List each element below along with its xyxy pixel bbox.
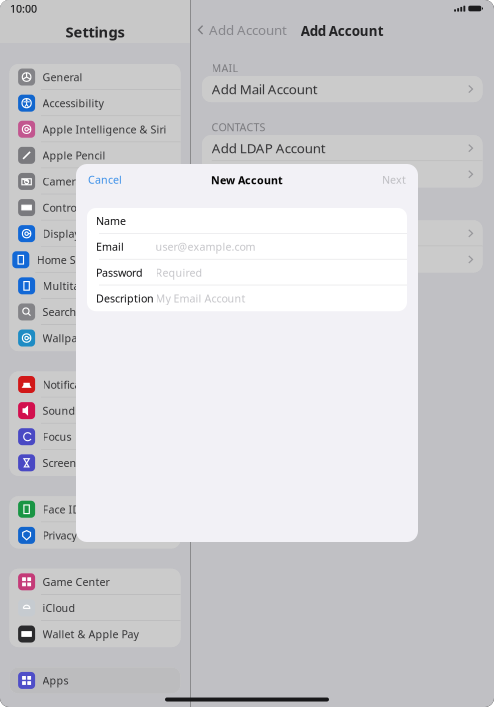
staticText: Apple Intelligence & Siri <box>43 122 167 136</box>
button[interactable]: Display & Brightness <box>9 221 180 247</box>
staticText: Required <box>155 265 202 280</box>
button[interactable]: Camera <box>9 168 180 194</box>
staticText: Privacy & Security <box>43 528 131 542</box>
button[interactable]: General <box>9 64 180 90</box>
staticText: Settings <box>65 22 124 41</box>
button[interactable]: Notifications <box>9 371 180 398</box>
staticText: Accessibility <box>43 96 104 110</box>
staticText: Home Screen & App Library <box>37 253 177 267</box>
staticText: Add Account <box>209 21 287 39</box>
staticText: user@example.com <box>155 240 255 254</box>
staticText: Apps <box>43 673 69 688</box>
staticText: Add Subscribed Calendar <box>212 251 366 268</box>
staticText: Name <box>96 214 126 228</box>
staticText: New Account <box>211 173 283 187</box>
staticText: Wallet & Apple Pay <box>43 627 139 641</box>
button[interactable]: Add Account <box>191 21 287 39</box>
staticText: My Email Account <box>155 291 245 305</box>
button[interactable]: Screen Time <box>9 450 180 476</box>
button[interactable]: Apps <box>9 667 180 693</box>
button[interactable]: Add CalDAV Account <box>202 220 482 246</box>
button[interactable]: Accessibility <box>9 90 180 116</box>
staticText: Search <box>43 305 77 319</box>
staticText: General <box>43 70 83 84</box>
button[interactable]: Control Center <box>9 194 180 221</box>
staticText: Multitasking & Gestures <box>43 279 167 293</box>
staticText: Password <box>96 265 143 280</box>
button[interactable]: Home Screen & App Library <box>4 247 186 273</box>
button[interactable]: Privacy & Security <box>9 522 180 548</box>
staticText: Description <box>96 291 154 305</box>
button[interactable]: Add CardDAV Account <box>202 161 482 187</box>
button[interactable]: Add LDAP Account <box>202 135 482 161</box>
staticText: Focus <box>43 430 72 444</box>
staticText: Face ID & Passcode <box>43 502 141 516</box>
staticText: MAIL <box>212 61 239 75</box>
button[interactable]: Apple Intelligence & Siri <box>9 116 180 142</box>
button[interactable]: Game Center <box>9 569 180 595</box>
staticText: iCloud <box>43 601 76 615</box>
staticText: CONTACTS <box>212 120 266 134</box>
staticText: Add CardDAV Account <box>212 165 346 183</box>
staticText: Add CalDAV Account <box>212 224 336 242</box>
staticText: Sounds <box>43 403 81 418</box>
button[interactable]: Add Subscribed Calendar <box>202 246 482 272</box>
staticText: Notifications <box>43 377 106 392</box>
staticText: Add LDAP Account <box>212 139 326 157</box>
staticText: Next <box>382 172 406 187</box>
button[interactable]: Apple Pencil <box>9 142 180 168</box>
staticText: Add Mail Account <box>212 80 318 98</box>
button[interactable]: Next <box>380 170 408 189</box>
button[interactable]: Focus <box>9 424 180 450</box>
staticText: Control Center <box>43 200 117 215</box>
staticText: 10:00 <box>10 1 37 16</box>
button[interactable]: Face ID & Passcode <box>9 496 180 522</box>
button[interactable]: iCloud <box>9 595 180 621</box>
staticText: Cancel <box>88 172 122 187</box>
button[interactable]: Add Mail Account <box>202 76 482 102</box>
staticText: CALENDARS <box>212 205 274 219</box>
staticText: Camera <box>43 174 82 189</box>
button[interactable]: Multitasking & Gestures <box>9 273 180 299</box>
staticText: Game Center <box>43 575 110 589</box>
button[interactable]: Wallet & Apple Pay <box>9 621 180 647</box>
staticText: Apple Pencil <box>43 148 106 162</box>
staticText: Email <box>96 240 124 254</box>
staticText: Wallpaper <box>43 331 95 345</box>
staticText: Screen Time <box>43 456 105 470</box>
button[interactable]: Cancel <box>86 170 124 189</box>
button[interactable]: Sounds <box>9 398 180 424</box>
button[interactable]: Wallpaper <box>9 325 180 351</box>
button[interactable]: Search <box>9 299 180 325</box>
staticText: Add Account <box>301 22 384 40</box>
staticText: Display & Brightness <box>43 227 149 241</box>
